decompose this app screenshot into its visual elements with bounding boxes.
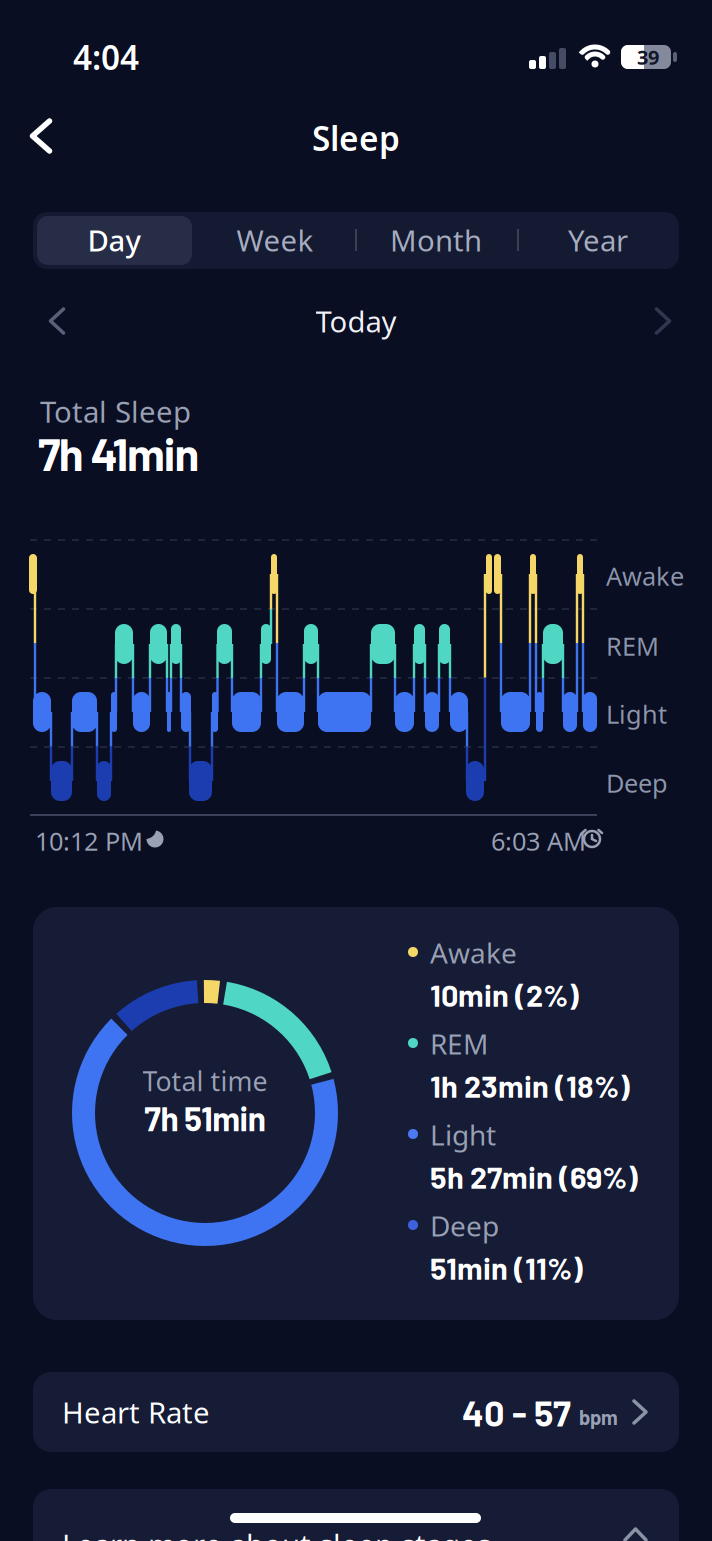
staticText: Week xyxy=(236,220,313,259)
button[interactable]: Year xyxy=(523,211,673,268)
staticText: 10:12 PM xyxy=(35,824,143,858)
staticText: 1h 23min (18%) xyxy=(430,1067,630,1104)
staticText: 6:03 AM xyxy=(491,824,586,858)
staticText: REM xyxy=(606,629,659,663)
staticText: Today xyxy=(315,301,396,340)
staticText: Total time xyxy=(142,1063,267,1099)
staticText: Day xyxy=(87,220,140,259)
staticText: bpm xyxy=(579,1405,618,1429)
staticText: Year xyxy=(568,220,628,259)
button[interactable]: Back xyxy=(20,109,61,163)
staticText: Light xyxy=(606,697,667,731)
staticText: Sleep xyxy=(312,116,400,160)
staticText: 4:04 xyxy=(73,35,139,79)
staticText: 51min (11%) xyxy=(430,1249,583,1286)
button[interactable]: Next day xyxy=(644,297,681,345)
staticText: Awake xyxy=(606,559,684,593)
staticText: 39 xyxy=(637,44,659,70)
staticText: Month xyxy=(390,220,482,259)
staticText: REM xyxy=(430,1025,488,1062)
button[interactable]: Heart Rate xyxy=(33,1372,679,1452)
staticText: 7h 51min xyxy=(144,1098,266,1138)
staticText: Learn more about sleep stages xyxy=(62,1525,491,1541)
staticText: Heart Rate xyxy=(62,1392,210,1431)
button[interactable]: Learn more about sleep stages xyxy=(33,1489,679,1541)
staticText: Total Sleep xyxy=(40,392,191,431)
staticText: 5h 27min (69%) xyxy=(430,1158,638,1195)
staticText: 40 - 57 xyxy=(462,1390,571,1434)
staticText: Deep xyxy=(606,766,668,800)
staticText: 7h 41min xyxy=(38,426,200,480)
staticText: Deep xyxy=(430,1207,499,1244)
button[interactable]: Month xyxy=(361,211,511,268)
button[interactable]: Day xyxy=(36,211,191,268)
staticText: Light xyxy=(430,1116,496,1153)
staticText: 10min (2%) xyxy=(430,976,579,1013)
button[interactable]: Week xyxy=(200,211,350,268)
staticText: Awake xyxy=(430,934,517,971)
button[interactable]: Previous day xyxy=(38,297,75,345)
button[interactable]: Today xyxy=(256,299,456,343)
